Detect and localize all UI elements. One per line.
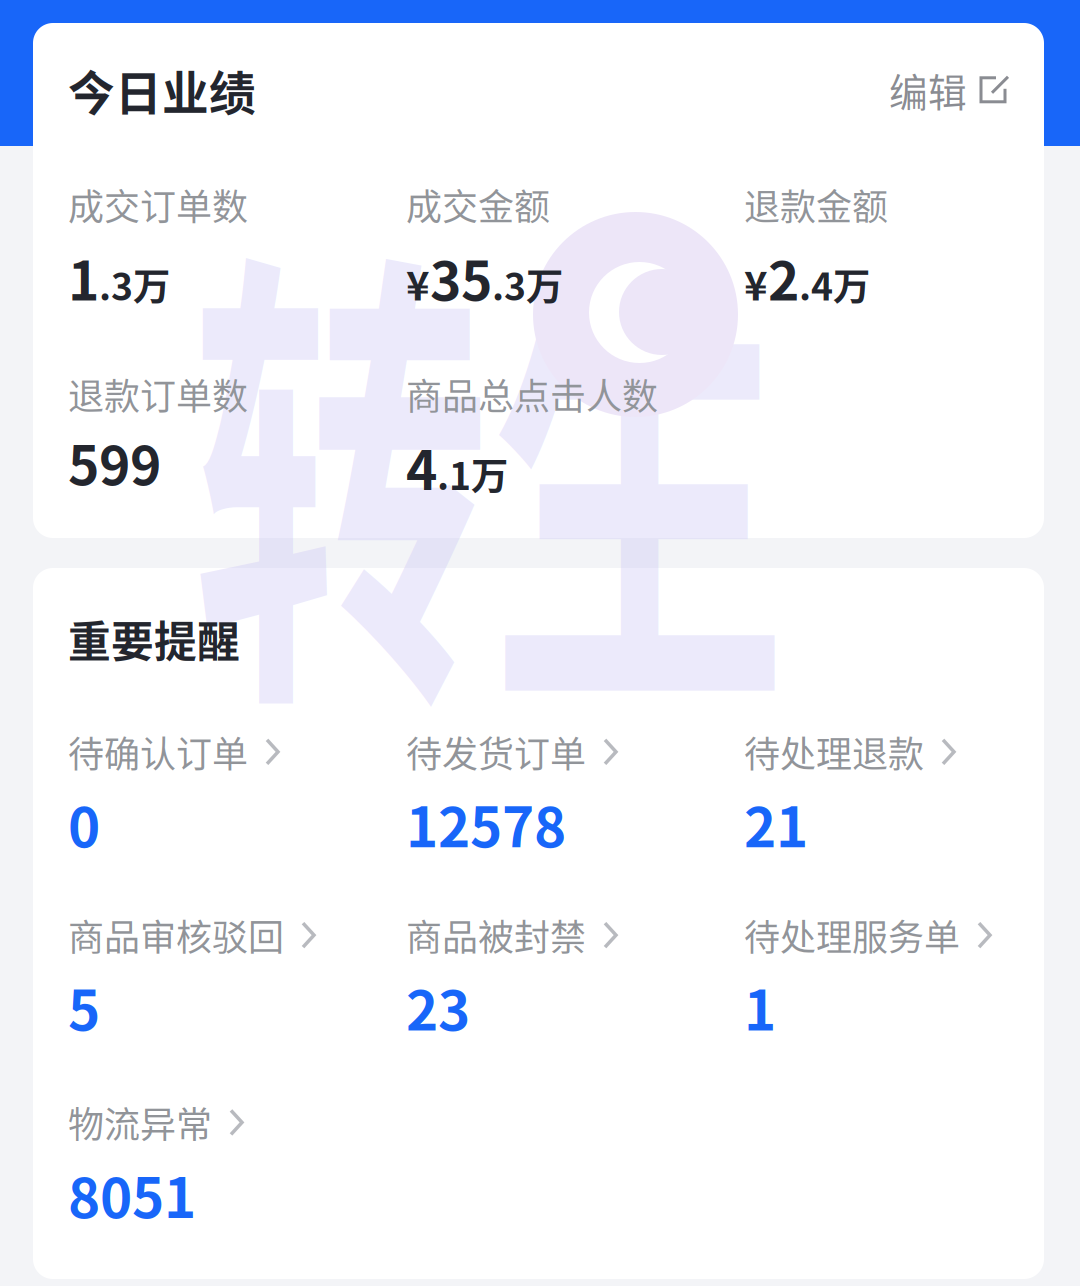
staticText: 0 <box>68 784 100 863</box>
staticText: .3万 <box>99 257 170 311</box>
staticText: 编辑 <box>889 62 967 118</box>
staticText: 成交金额 <box>406 179 550 231</box>
staticText: 退款金额 <box>744 179 888 231</box>
staticText: 商品总点击人数 <box>406 368 658 420</box>
staticText: 商品被封禁 <box>406 909 586 961</box>
button[interactable]: 待发货订单 <box>406 726 744 863</box>
button[interactable]: 物流异常 <box>68 1096 244 1234</box>
button[interactable]: 待确认订单 <box>68 726 406 863</box>
staticText: 待处理退款 <box>744 726 924 778</box>
staticText: 1 <box>68 239 99 316</box>
staticText: .3万 <box>492 257 563 311</box>
staticText: 8051 <box>68 1154 196 1234</box>
button[interactable]: 待处理服务单 <box>744 909 992 1046</box>
staticText: 待处理服务单 <box>744 909 960 961</box>
staticText: 5 <box>68 967 100 1046</box>
staticText: .1万 <box>437 447 508 501</box>
staticText: 4 <box>406 428 437 505</box>
button[interactable]: 待处理退款 <box>744 726 956 863</box>
button[interactable]: 商品审核驳回 <box>68 909 406 1046</box>
staticText: 成交订单数 <box>68 179 248 231</box>
staticText: .4万 <box>799 257 870 311</box>
button[interactable]: 商品被封禁 <box>406 909 744 1046</box>
staticText: 21 <box>744 784 808 863</box>
staticText: ¥ <box>406 254 430 312</box>
staticText: 待发货订单 <box>406 726 586 778</box>
button[interactable]: 编辑 <box>889 62 1009 118</box>
staticText: 12578 <box>406 784 566 863</box>
staticText: 重要提醒 <box>68 608 240 670</box>
staticText: 今日业绩 <box>68 56 256 124</box>
staticText: 1 <box>744 967 776 1046</box>
staticText: 退款订单数 <box>68 368 248 420</box>
staticText: 待确认订单 <box>68 726 248 778</box>
staticText: 转生 <box>192 112 952 662</box>
staticText: 商品审核驳回 <box>68 909 284 961</box>
staticText: 2 <box>768 239 799 316</box>
staticText: 23 <box>406 967 470 1046</box>
staticText: 35 <box>430 239 492 316</box>
staticText: 599 <box>68 423 161 500</box>
staticText: ¥ <box>744 254 768 312</box>
staticText: 物流异常 <box>68 1096 212 1148</box>
